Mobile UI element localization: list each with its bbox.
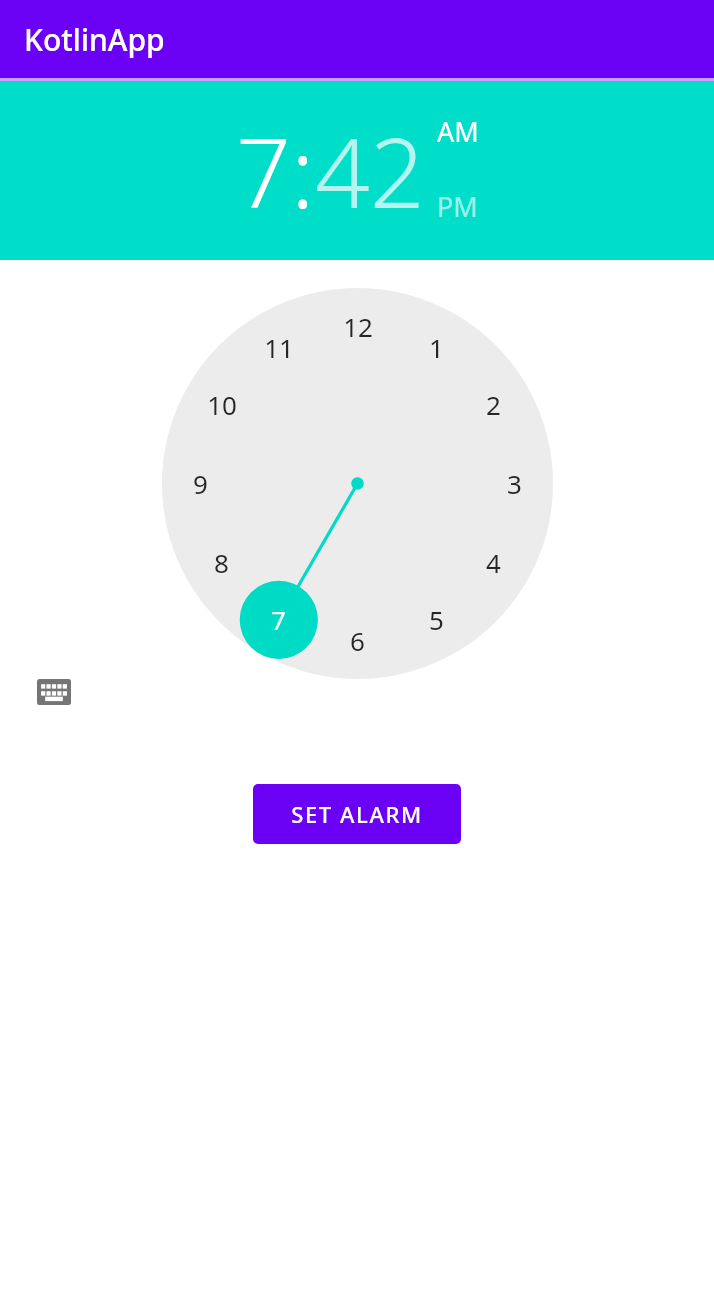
staticText: 2 — [486, 387, 501, 422]
staticText: 11 — [264, 330, 294, 365]
staticText: KotlinApp — [24, 19, 165, 60]
button[interactable]: PM — [437, 188, 478, 225]
staticText: 12 — [343, 309, 373, 344]
button[interactable]: SET ALARM — [253, 784, 461, 844]
staticText: 3 — [507, 466, 522, 501]
staticText: 1 — [429, 330, 444, 365]
staticText: PM — [437, 188, 478, 225]
staticText: 5 — [429, 602, 444, 637]
button[interactable]: AM — [437, 113, 479, 150]
button[interactable]: 12 — [162, 288, 553, 679]
staticText: 9 — [193, 466, 208, 501]
button[interactable]: 7 — [236, 105, 291, 236]
button[interactable]: Switch to text input — [34, 672, 74, 712]
staticText: AM — [437, 113, 479, 150]
staticText: SET ALARM — [291, 799, 423, 829]
staticText: : — [291, 105, 315, 236]
button[interactable]: 42 — [315, 105, 425, 236]
staticText: 6 — [350, 623, 365, 658]
staticText: 8 — [214, 545, 229, 580]
staticText: 7 — [271, 602, 286, 637]
staticText: 4 — [486, 545, 501, 580]
staticText: 10 — [207, 387, 237, 422]
